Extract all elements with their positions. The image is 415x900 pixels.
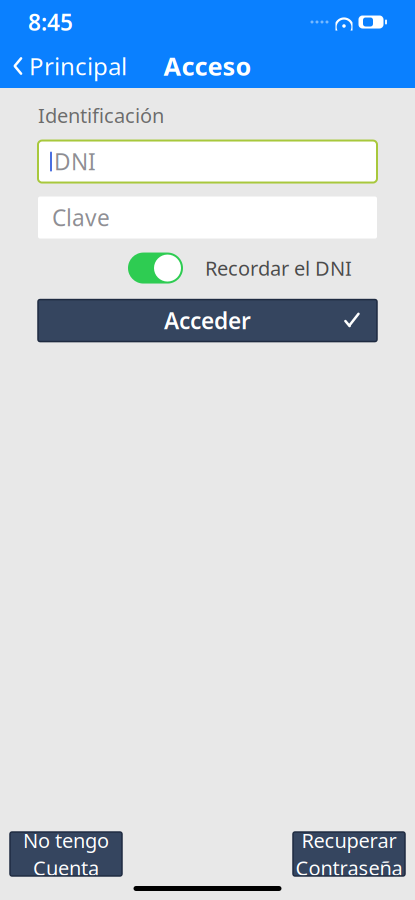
button[interactable]: Recuperar [293,832,405,876]
staticText: Recordar el DNI [205,255,352,281]
staticText: Recuperar [301,827,396,853]
button[interactable]: No tengo [10,832,122,876]
staticText: 8:45 [28,7,73,37]
staticText: Identificación [38,102,164,129]
staticText: DNI [54,146,96,177]
button[interactable]: Principal [0,44,139,88]
staticText: Contraseña [295,854,402,881]
staticText: Principal [29,50,127,82]
staticText: Cuenta [33,854,99,881]
staticText: Acceder [164,305,251,336]
button[interactable]: Acceder [38,300,377,342]
staticText: Clave [52,202,110,233]
staticText: No tengo [23,827,109,853]
button[interactable]: Recordar el DNI [128,253,183,284]
staticText: Acceso [163,49,251,83]
